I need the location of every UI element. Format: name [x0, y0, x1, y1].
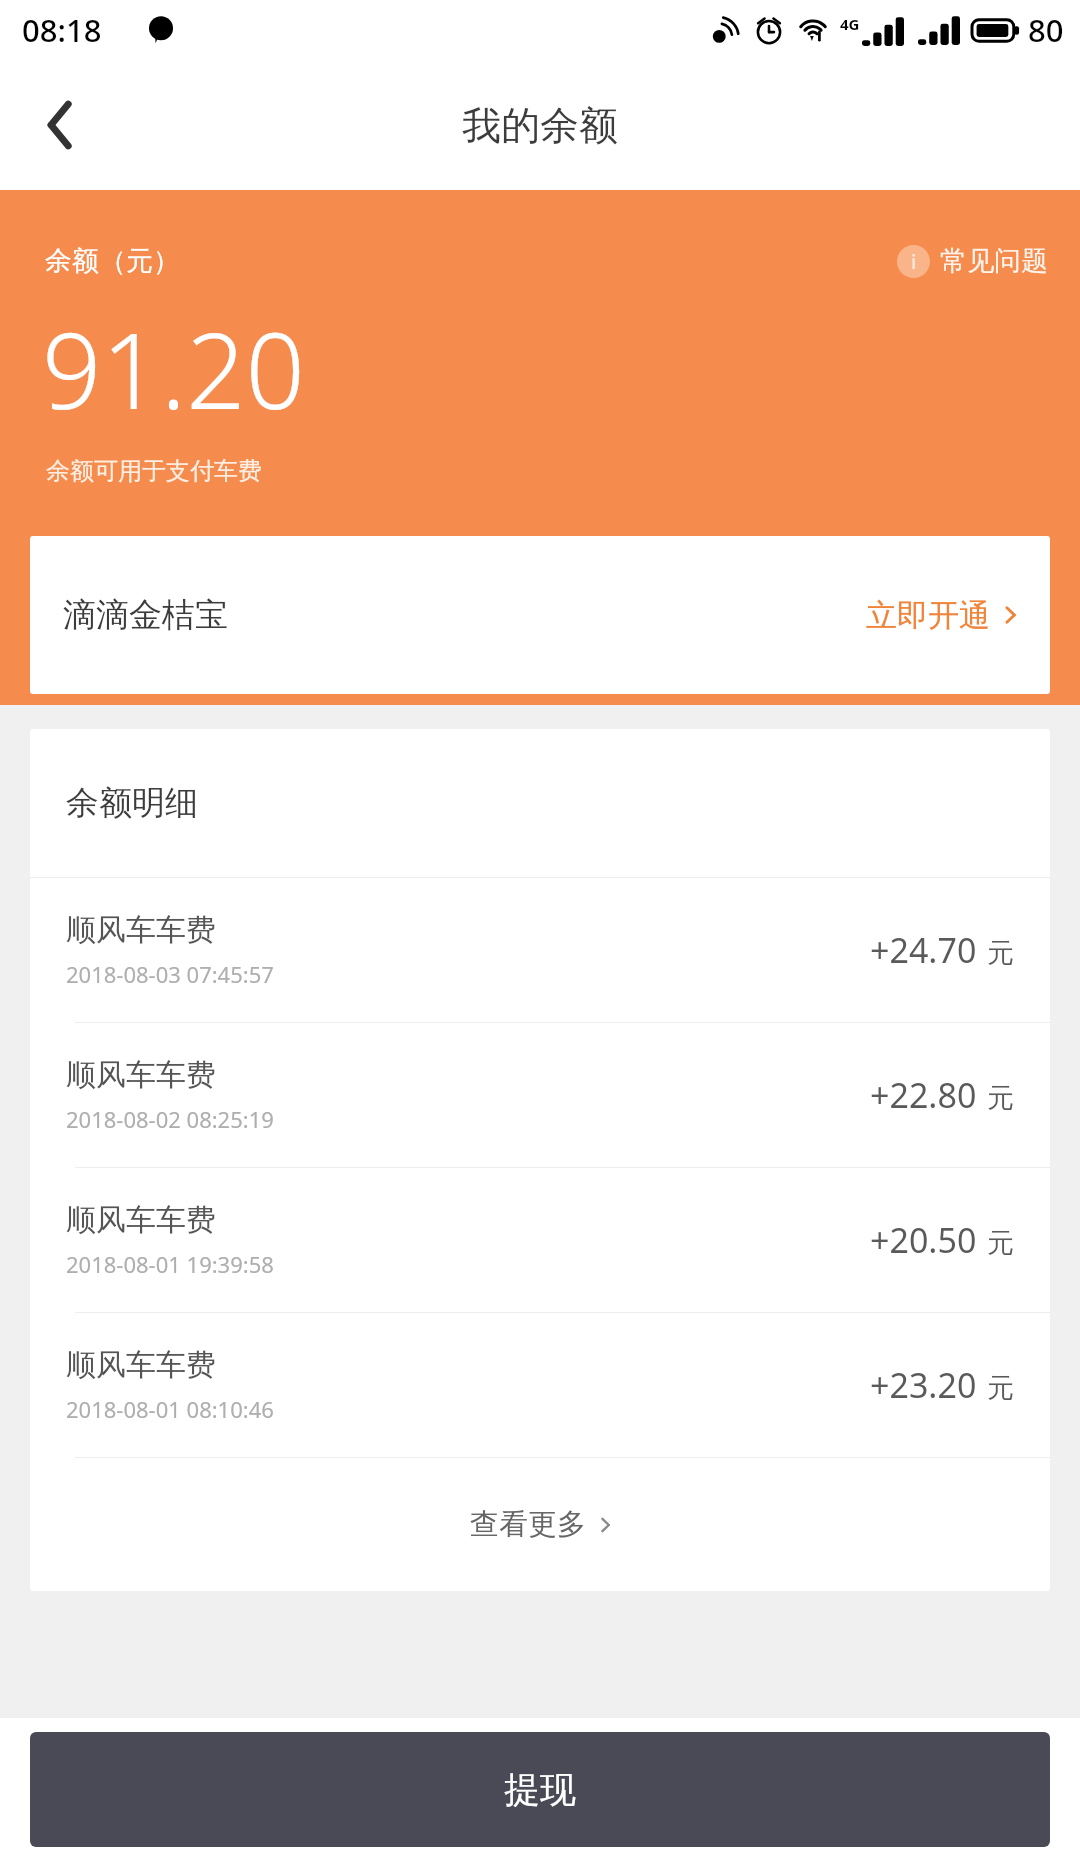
- staticText: 2018-08-03 07:45:57: [66, 959, 274, 989]
- button[interactable]: 查看更多: [30, 1458, 1050, 1591]
- staticText: 顺风车车费: [66, 1056, 216, 1094]
- staticText: 我的余额: [462, 101, 618, 150]
- staticText: i: [911, 248, 917, 275]
- staticText: 提现: [504, 1767, 576, 1812]
- button[interactable]: Back: [0, 60, 120, 190]
- staticText: +20.50: [870, 1217, 977, 1263]
- button[interactable]: i: [891, 238, 1054, 284]
- staticText: 余额明细: [66, 782, 198, 824]
- button[interactable]: 顺风车车费: [30, 878, 1050, 1022]
- staticText: +24.70: [870, 927, 977, 973]
- staticText: 元: [987, 1081, 1014, 1115]
- staticText: 4G: [840, 14, 860, 34]
- staticText: 查看更多: [470, 1506, 586, 1543]
- staticText: 滴滴金桔宝: [63, 594, 228, 636]
- staticText: 91.20: [42, 298, 305, 440]
- staticText: 08:18: [22, 9, 102, 51]
- button[interactable]: 顺风车车费: [30, 1168, 1050, 1312]
- staticText: +23.20: [870, 1362, 977, 1408]
- staticText: 立即开通: [866, 596, 990, 635]
- staticText: 顺风车车费: [66, 1201, 216, 1239]
- staticText: 顺风车车费: [66, 1346, 216, 1384]
- staticText: 常见问题: [940, 244, 1048, 278]
- staticText: +22.80: [870, 1072, 977, 1118]
- staticText: 2018-08-02 08:25:19: [66, 1104, 274, 1134]
- staticText: 余额（元）: [45, 244, 180, 278]
- button[interactable]: 顺风车车费: [30, 1023, 1050, 1167]
- staticText: 余额可用于支付车费: [46, 456, 262, 486]
- button[interactable]: 顺风车车费: [30, 1313, 1050, 1457]
- staticText: 元: [987, 936, 1014, 970]
- staticText: 2018-08-01 19:39:58: [66, 1249, 274, 1279]
- staticText: 2018-08-01 08:10:46: [66, 1394, 274, 1424]
- button[interactable]: 滴滴金桔宝: [30, 536, 1050, 694]
- staticText: 元: [987, 1371, 1014, 1405]
- staticText: 元: [987, 1226, 1014, 1260]
- button[interactable]: 提现: [30, 1732, 1050, 1847]
- staticText: 顺风车车费: [66, 911, 216, 949]
- staticText: 80: [1028, 9, 1064, 51]
